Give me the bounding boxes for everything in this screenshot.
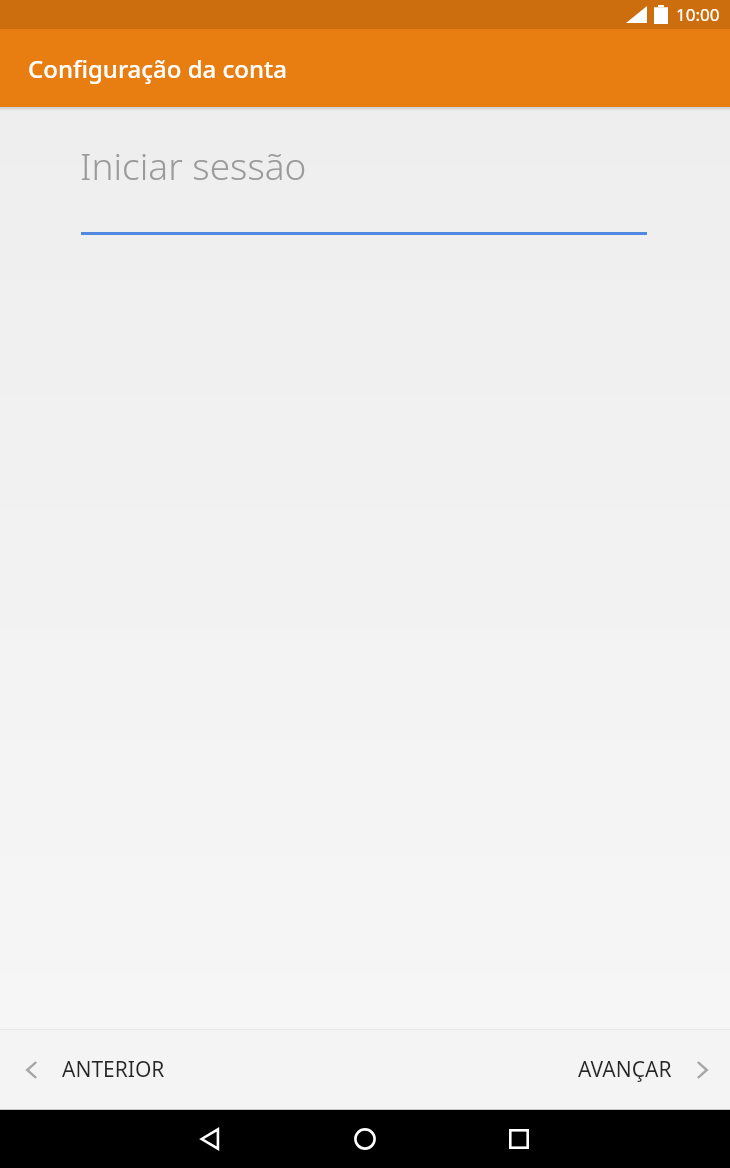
button[interactable]: Back (186, 1115, 234, 1163)
staticText: Configuração da conta (28, 52, 287, 85)
button[interactable]: AVANÇAR (554, 1029, 730, 1110)
staticText: 10:00 (676, 3, 720, 26)
button[interactable]: ANTERIOR (0, 1029, 189, 1110)
button[interactable]: Recent apps (495, 1115, 543, 1163)
button[interactable]: Home (341, 1115, 389, 1163)
staticText: ANTERIOR (62, 1055, 165, 1084)
staticText: Iniciar sessão (80, 140, 307, 190)
staticText: AVANÇAR (578, 1055, 672, 1084)
